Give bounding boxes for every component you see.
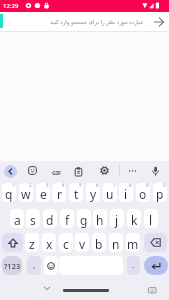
staticText: u — [106, 186, 114, 202]
button[interactable]: j — [110, 209, 124, 228]
staticText: a — [14, 212, 21, 228]
button[interactable]: v — [75, 233, 89, 252]
button[interactable]: u — [103, 183, 117, 202]
button[interactable]: c — [59, 233, 73, 252]
button[interactable] — [144, 256, 168, 275]
button[interactable]: g — [77, 209, 91, 228]
button[interactable] — [100, 166, 109, 175]
staticText: g — [80, 212, 88, 228]
button[interactable] — [74, 167, 83, 177]
staticText: 1 — [12, 183, 15, 188]
button[interactable]: f — [60, 209, 74, 228]
staticText: ?123 — [4, 261, 21, 271]
button[interactable]: x — [42, 233, 56, 252]
button[interactable] — [4, 165, 17, 178]
button[interactable] — [44, 256, 58, 275]
staticText: r — [57, 186, 62, 202]
button[interactable]: w — [19, 183, 33, 202]
button[interactable]: k — [127, 209, 141, 228]
staticText: f — [65, 212, 70, 228]
staticText: 5 — [79, 183, 82, 188]
staticText: y — [90, 186, 97, 202]
staticText: GIF — [52, 169, 62, 176]
button[interactable]: p — [153, 183, 167, 202]
button[interactable]: a — [10, 209, 24, 228]
staticText: 8 — [129, 183, 132, 188]
staticText: j — [115, 212, 119, 228]
staticText: , — [33, 259, 36, 270]
button[interactable] — [128, 167, 137, 175]
button[interactable]: d — [43, 209, 57, 228]
staticText: 4 — [62, 183, 65, 188]
staticText: عبارت مورد نظر را برای جستجو وارد کنید — [50, 18, 144, 25]
staticText: c — [63, 236, 69, 252]
button[interactable]: n — [109, 233, 123, 252]
button[interactable]: عبارت مورد نظر را برای جستجو وارد کنید — [0, 12, 169, 31]
staticText: l — [149, 212, 153, 228]
staticText: m — [127, 236, 139, 252]
staticText: o — [139, 186, 147, 202]
button[interactable]: t — [69, 183, 83, 202]
staticText: w — [21, 186, 31, 202]
staticText: b — [95, 236, 103, 252]
staticText: 0 — [163, 183, 166, 188]
staticText: p — [156, 186, 164, 202]
staticText: x — [46, 236, 53, 252]
button[interactable]: o — [136, 183, 150, 202]
staticText: n — [112, 236, 120, 252]
staticText: z — [29, 236, 35, 252]
staticText: q — [5, 186, 13, 202]
staticText: 2 — [29, 183, 32, 188]
button[interactable] — [151, 166, 160, 177]
button[interactable] — [28, 166, 37, 175]
button[interactable]: m — [126, 233, 140, 252]
staticText: d — [46, 212, 54, 228]
staticText: t — [74, 186, 79, 202]
staticText: 7 — [113, 183, 116, 188]
staticText: h — [96, 212, 104, 228]
button[interactable]: r — [52, 183, 66, 202]
button[interactable]: ?123 — [2, 256, 22, 275]
staticText: 6 — [96, 183, 99, 188]
staticText: i — [124, 186, 128, 202]
staticText: v — [79, 236, 86, 252]
button[interactable]: l — [144, 209, 158, 228]
button[interactable]: e — [36, 183, 50, 202]
button[interactable]: i — [119, 183, 133, 202]
button[interactable]: z — [25, 233, 39, 252]
button[interactable]: h — [93, 209, 107, 228]
button[interactable]: b — [92, 233, 106, 252]
button[interactable] — [2, 233, 23, 252]
staticText: . — [132, 259, 135, 270]
button[interactable]: q — [2, 183, 16, 202]
button[interactable]: GIF — [50, 168, 64, 177]
staticText: k — [131, 212, 138, 228]
button[interactable] — [144, 233, 167, 252]
button[interactable]: , — [27, 256, 41, 275]
staticText: s — [30, 212, 36, 228]
staticText: 12:29 — [3, 2, 19, 10]
button[interactable]: y — [86, 183, 100, 202]
staticText: 3 — [46, 183, 49, 188]
button[interactable]: s — [26, 209, 40, 228]
staticText: 9 — [146, 183, 149, 188]
button[interactable]: . — [127, 256, 140, 275]
staticText: e — [40, 186, 47, 202]
